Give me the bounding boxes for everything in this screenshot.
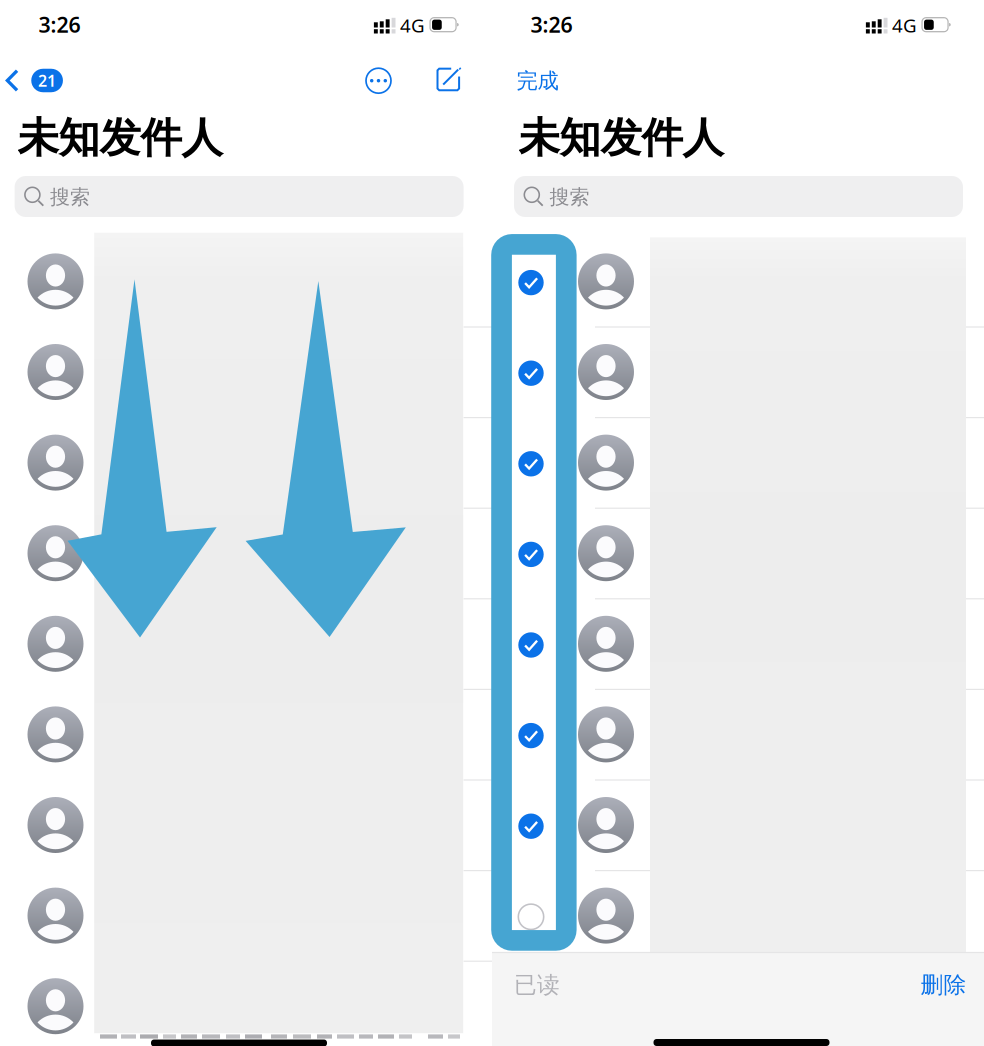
staticText: 4G [400, 13, 425, 38]
button[interactable]: More [356, 59, 400, 103]
button[interactable]: 完成 [506, 59, 570, 103]
button[interactable]: 搜索 [15, 176, 464, 217]
staticText: 4G [892, 13, 917, 38]
staticText: 完成 [517, 68, 559, 94]
button[interactable]: Back, 21 unread [1, 59, 68, 102]
button[interactable]: 删除 [913, 963, 975, 1007]
staticText: 已读 [514, 971, 560, 999]
button[interactable]: Compose [427, 57, 471, 101]
staticText: 3:26 [39, 10, 81, 39]
staticText: 搜索 [50, 185, 90, 209]
staticText: 搜索 [549, 185, 589, 209]
staticText: 未知发件人 [17, 113, 222, 163]
staticText: 3:26 [531, 10, 573, 39]
staticText: 未知发件人 [518, 113, 723, 163]
staticText: 21 [38, 70, 56, 91]
staticText: 删除 [921, 971, 967, 999]
button[interactable]: 搜索 [514, 176, 963, 217]
